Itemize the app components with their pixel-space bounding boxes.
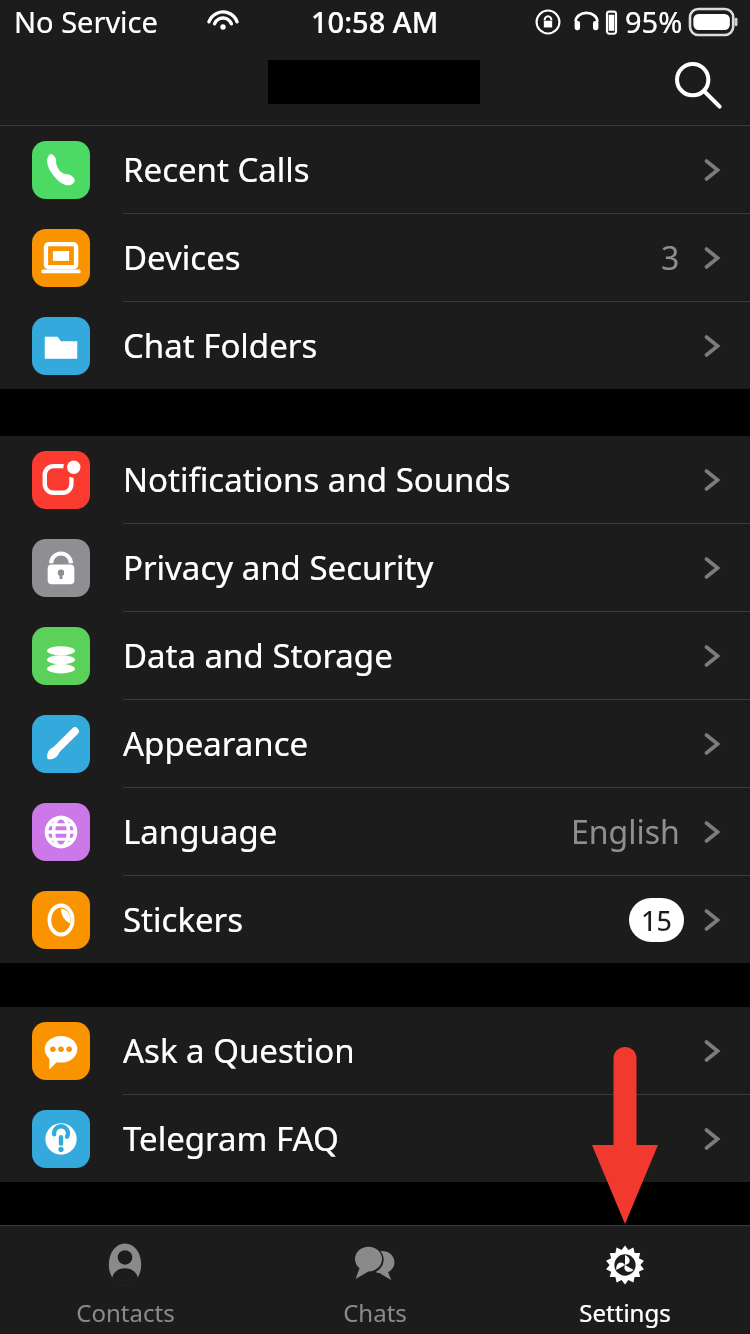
staticText: Chats [343,1296,407,1329]
staticText: Chat Folders [123,323,318,368]
button[interactable]: Appearance [0,700,750,787]
button[interactable]: Privacy and Security [0,524,750,611]
staticText: English [571,810,680,854]
button[interactable]: Language [0,788,750,875]
button[interactable]: Notifications and Sounds [0,436,750,523]
staticText: 15 [641,902,672,939]
staticText: Notifications and Sounds [123,457,511,502]
staticText: No Service [14,2,158,41]
button[interactable]: Telegram FAQ [0,1095,750,1182]
button[interactable]: Stickers [0,876,750,963]
staticText: Contacts [76,1296,175,1329]
staticText: Ask a Question [123,1028,355,1073]
staticText: Devices [123,235,241,280]
staticText: 3 [661,236,680,280]
button[interactable]: Data and Storage [0,612,750,699]
staticText: Telegram FAQ [123,1116,339,1161]
button[interactable]: Search [670,57,724,111]
staticText: 95% [625,2,683,41]
staticText: Privacy and Security [123,545,434,590]
button[interactable]: Chats [250,1226,500,1334]
button[interactable]: Devices [0,214,750,301]
staticText: Appearance [123,721,309,766]
staticText: Data and Storage [123,633,393,678]
button[interactable]: Chat Folders [0,302,750,389]
button[interactable]: Settings [500,1226,750,1334]
staticText: Language [123,809,278,854]
staticText: Recent Calls [123,147,310,192]
staticText: 10:58 AM [311,2,439,41]
button[interactable]: Recent Calls [0,126,750,213]
staticText: Stickers [123,897,244,942]
button[interactable]: Contacts [0,1226,250,1334]
button[interactable]: Ask a Question [0,1007,750,1094]
staticText: Settings [579,1296,671,1329]
